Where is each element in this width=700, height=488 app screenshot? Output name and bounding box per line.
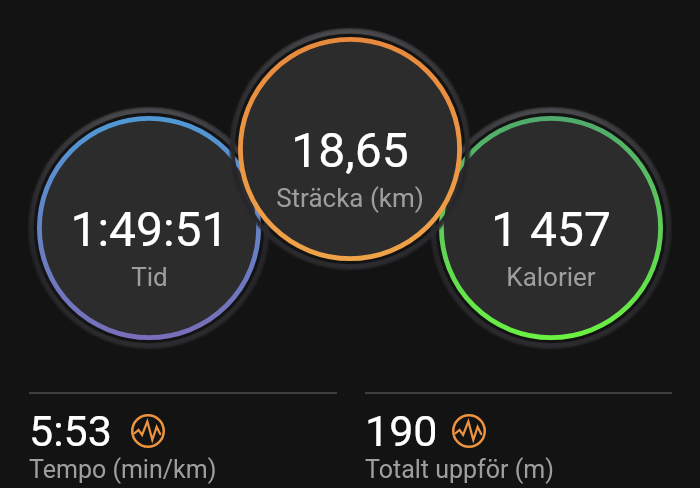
button[interactable]: 18,65 bbox=[229, 28, 471, 270]
button[interactable]: 5:53 bbox=[29, 392, 337, 488]
button[interactable]: 1 457 bbox=[430, 107, 672, 349]
staticText: Sträcka (km) bbox=[276, 183, 424, 213]
staticText: 1 457 bbox=[491, 201, 611, 257]
staticText: 18,65 bbox=[291, 122, 409, 178]
staticText: 1:49:51 bbox=[70, 201, 229, 257]
staticText: Kalorier bbox=[506, 262, 596, 292]
staticText: 5:53 bbox=[29, 406, 112, 456]
other: Tempo (min/km) graph bbox=[131, 414, 165, 448]
button[interactable]: 190 bbox=[365, 392, 672, 488]
button[interactable]: 1:49:51 bbox=[28, 107, 270, 349]
staticText: 190 bbox=[365, 406, 438, 456]
staticText: Tid bbox=[131, 262, 168, 292]
staticText: Totalt uppför (m) bbox=[365, 455, 554, 484]
other: Totalt uppför (m) graph bbox=[452, 414, 486, 448]
staticText: Tempo (min/km) bbox=[29, 455, 217, 484]
